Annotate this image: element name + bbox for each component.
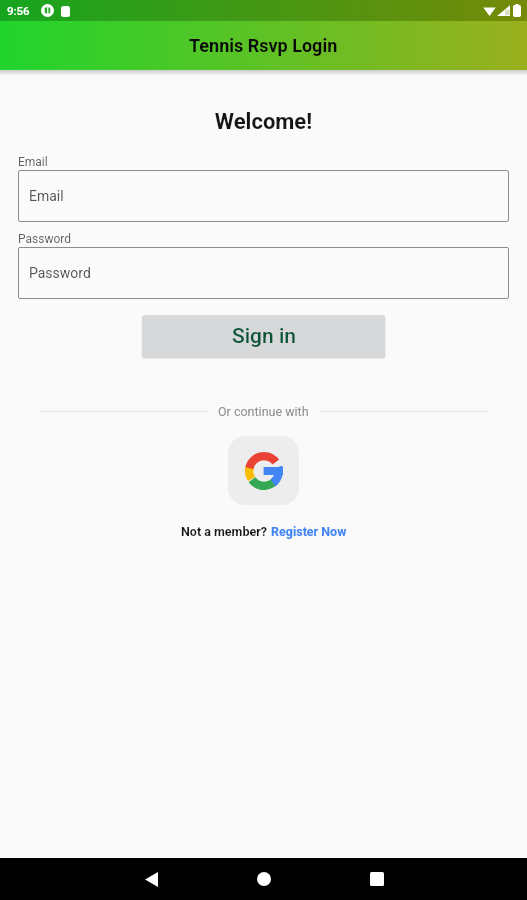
button[interactable]: Home	[236, 858, 292, 900]
staticText: 9:56	[7, 4, 30, 17]
staticText: Welcome!	[0, 109, 527, 135]
staticText: Sign in	[232, 324, 296, 349]
button[interactable]: Email	[18, 170, 509, 222]
button[interactable]: Sign in with Google	[228, 436, 299, 505]
staticText: Email	[18, 155, 48, 169]
staticText: Register Now	[271, 524, 347, 539]
staticText: Email	[29, 188, 64, 204]
button[interactable]: Sign in	[142, 315, 385, 358]
staticText: Not a member?	[181, 524, 271, 539]
staticText: Password	[29, 265, 91, 281]
button[interactable]: Back	[123, 858, 179, 900]
staticText: Or continue with	[218, 404, 309, 419]
button[interactable]: Register Now	[271, 524, 347, 539]
button[interactable]: Recent apps	[349, 858, 405, 900]
button[interactable]: Password	[18, 247, 509, 299]
staticText: Tennis Rsvp Login	[189, 35, 338, 56]
staticText: Password	[18, 232, 72, 246]
